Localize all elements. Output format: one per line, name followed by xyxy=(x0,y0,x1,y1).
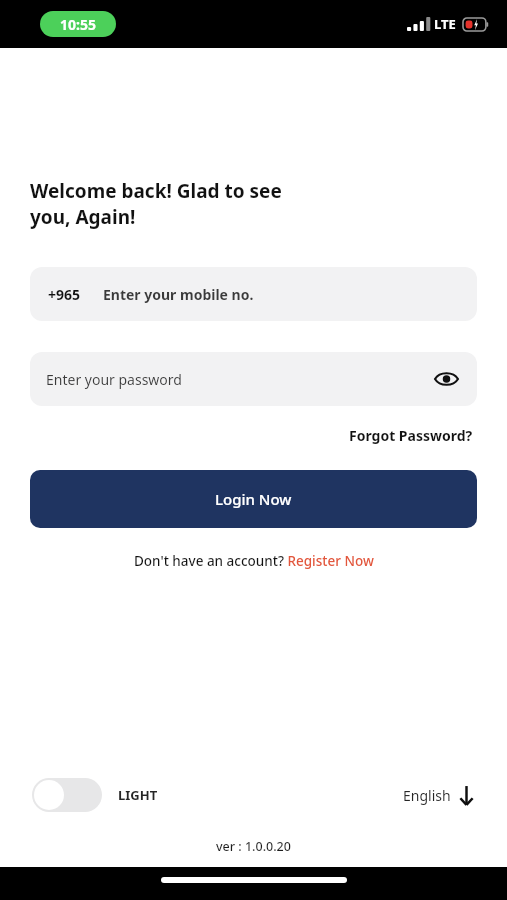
other: Change language xyxy=(458,785,475,806)
staticText: +965 xyxy=(48,285,81,304)
staticText: English xyxy=(403,786,451,805)
button[interactable]: Login Now xyxy=(30,470,477,528)
button[interactable]: English xyxy=(403,785,475,806)
staticText: ver : 1.0.0.20 xyxy=(216,838,291,855)
staticText: Welcome back! Glad to see you, Again! xyxy=(30,178,282,229)
other: Light theme toggle xyxy=(32,778,102,812)
button[interactable]: +965 xyxy=(30,267,477,321)
staticText: LIGHT xyxy=(118,786,158,804)
button[interactable]: Show password xyxy=(429,362,463,396)
staticText: Login Now xyxy=(215,489,292,509)
staticText: 10:55 xyxy=(60,15,96,34)
staticText: Enter your mobile no. xyxy=(103,285,254,304)
staticText: Forgot Password? xyxy=(349,426,473,445)
staticText: Don't have an account? Register Now xyxy=(134,552,374,570)
button[interactable]: Enter your password xyxy=(30,352,477,406)
staticText: Enter your password xyxy=(46,370,429,389)
staticText: LTE xyxy=(434,15,456,33)
button[interactable]: Light theme toggle xyxy=(32,778,158,812)
button[interactable]: Forgot Password? xyxy=(345,422,477,449)
button[interactable]: Don't have an account? Register Now xyxy=(128,549,380,573)
